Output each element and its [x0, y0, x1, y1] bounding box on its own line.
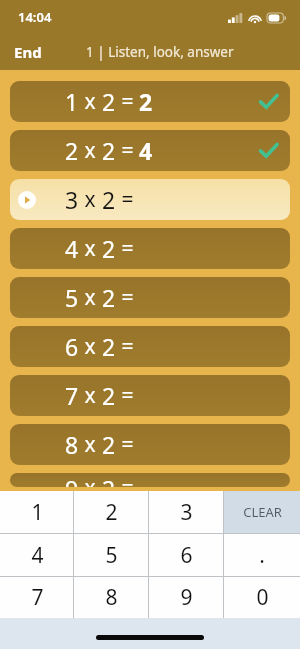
button[interactable]: 3 — [149, 491, 224, 533]
staticText: 14:04 — [18, 8, 52, 26]
staticText: x — [79, 87, 102, 116]
button[interactable]: 6 — [10, 326, 290, 367]
staticText: = — [116, 430, 139, 459]
staticText: 3 — [180, 498, 193, 527]
staticText: 0 — [256, 583, 269, 612]
button[interactable]: 4 — [0, 534, 74, 576]
staticText: 2 — [102, 380, 116, 411]
staticText: 7 — [31, 583, 44, 612]
button[interactable]: 2 — [74, 491, 149, 533]
staticText: = — [116, 381, 139, 410]
button[interactable]: 0 — [224, 577, 300, 618]
staticText: 2 — [102, 233, 116, 264]
button[interactable]: 5 — [74, 534, 149, 576]
staticText: 1 — [31, 498, 44, 527]
button[interactable]: 7 — [10, 375, 290, 416]
staticText: x — [79, 381, 102, 410]
staticText: x — [79, 283, 102, 312]
staticText: . — [259, 541, 265, 570]
staticText: 5 — [65, 282, 79, 313]
staticText: = — [116, 332, 139, 361]
staticText: 2 — [139, 86, 153, 117]
button[interactable]: 2 — [10, 130, 290, 171]
button[interactable]: 4 — [10, 228, 290, 269]
staticText: 4 — [65, 233, 79, 264]
staticText: 4 — [139, 135, 153, 166]
button[interactable]: 6 — [149, 534, 224, 576]
button[interactable]: 5 — [10, 277, 290, 318]
button[interactable]: 9 — [149, 577, 224, 618]
staticText: x — [79, 185, 102, 214]
button[interactable]: 8 — [74, 577, 149, 618]
staticText: x — [79, 136, 102, 165]
staticText: 1 — [65, 86, 79, 117]
staticText: = — [116, 136, 139, 165]
button[interactable]: 7 — [0, 577, 74, 618]
button[interactable]: End — [0, 36, 52, 68]
staticText: = — [116, 473, 139, 487]
staticText: 2 — [102, 135, 116, 166]
staticText: 2 — [102, 473, 116, 487]
staticText: 3 — [65, 184, 79, 215]
button[interactable]: 9 — [10, 473, 290, 487]
staticText: 6 — [180, 541, 193, 570]
staticText: 5 — [105, 541, 118, 570]
button[interactable]: Play — [10, 179, 290, 220]
other: Play — [18, 191, 36, 209]
staticText: 2 — [102, 282, 116, 313]
staticText: 2 — [102, 331, 116, 362]
staticText: 2 — [102, 429, 116, 460]
staticText: 2 — [102, 184, 116, 215]
staticText: x — [79, 473, 102, 487]
staticText: 2 — [105, 498, 118, 527]
staticText: 6 — [65, 331, 79, 362]
staticText: 2 — [65, 135, 79, 166]
staticText: 7 — [65, 380, 79, 411]
staticText: = — [116, 185, 139, 214]
staticText: End — [14, 42, 42, 62]
staticText: 2 — [102, 86, 116, 117]
button[interactable]: CLEAR — [224, 491, 300, 533]
staticText: 9 — [65, 473, 79, 487]
button[interactable]: 8 — [10, 424, 290, 465]
staticText: 4 — [31, 541, 44, 570]
button[interactable]: 1 — [10, 81, 290, 122]
staticText: 8 — [65, 429, 79, 460]
button[interactable]: 1 — [0, 491, 74, 533]
staticText: x — [79, 430, 102, 459]
staticText: = — [116, 283, 139, 312]
staticText: 1 | Listen, look, answer — [86, 43, 234, 61]
staticText: CLEAR — [243, 503, 282, 521]
staticText: 9 — [180, 583, 193, 612]
staticText: = — [116, 234, 139, 263]
staticText: 8 — [105, 583, 118, 612]
staticText: x — [79, 234, 102, 263]
staticText: x — [79, 332, 102, 361]
staticText: = — [116, 87, 139, 116]
button[interactable]: . — [224, 534, 300, 576]
